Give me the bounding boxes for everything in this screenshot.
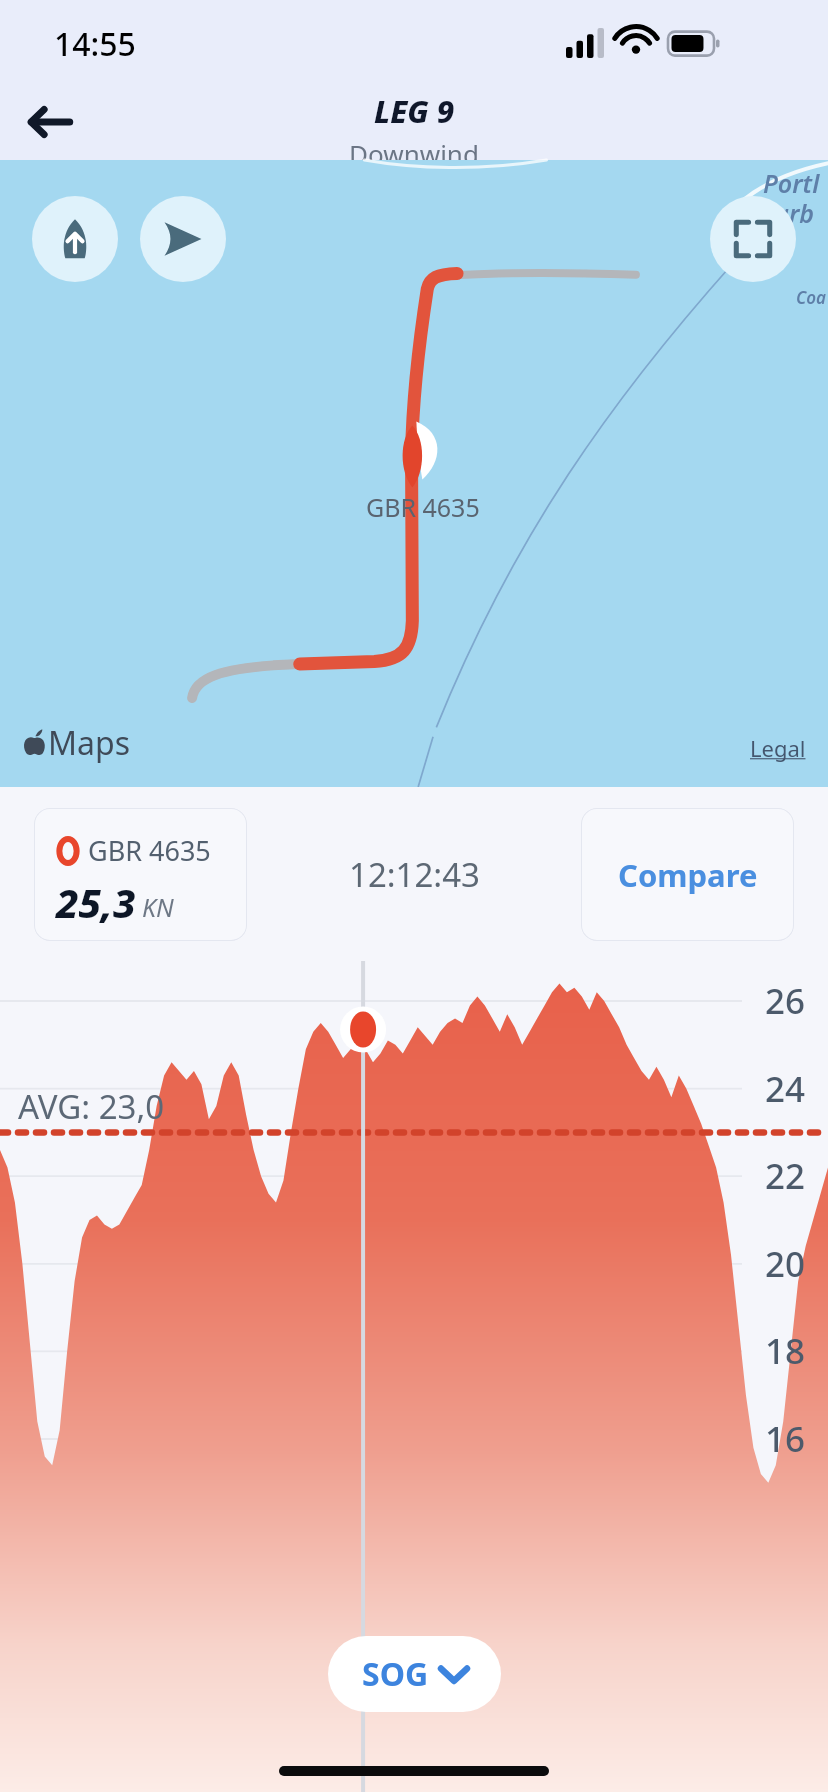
staticText: 16 xyxy=(765,1415,806,1463)
staticText: KN xyxy=(142,890,174,924)
staticText: Downwind xyxy=(349,136,479,160)
button[interactable]: Compare xyxy=(581,808,794,941)
staticText: 12:12:43 xyxy=(349,852,480,897)
button[interactable]: Fullscreen xyxy=(710,196,796,282)
staticText: 26 xyxy=(765,977,806,1025)
staticText: 22 xyxy=(765,1152,806,1200)
button[interactable]: Back xyxy=(16,88,84,156)
staticText: AVG: 23,0 xyxy=(18,1084,165,1129)
staticText: LEG 9 xyxy=(374,90,455,132)
staticText: Compare xyxy=(618,854,758,896)
staticText: 20 xyxy=(765,1240,806,1288)
button[interactable]: Heading xyxy=(140,196,226,282)
staticText: Portl xyxy=(763,166,820,200)
staticText: GBR 4635 xyxy=(366,490,480,524)
staticText: 14:55 xyxy=(54,22,136,66)
staticText: GBR 4635 xyxy=(88,832,211,869)
staticText: SOG xyxy=(362,1652,429,1696)
staticText: 25,3 xyxy=(56,875,136,929)
button[interactable]: Legal xyxy=(750,733,806,763)
staticText: Coa xyxy=(796,286,826,309)
button[interactable]: GBR 4635 xyxy=(34,808,247,941)
staticText: Maps xyxy=(48,721,130,765)
staticText: 18 xyxy=(765,1327,806,1375)
button[interactable]: Center on boat xyxy=(32,196,118,282)
staticText: Legal xyxy=(750,733,806,763)
staticText: Harb xyxy=(757,196,814,230)
staticText: 24 xyxy=(765,1065,806,1113)
button[interactable]: SOG xyxy=(328,1636,501,1712)
